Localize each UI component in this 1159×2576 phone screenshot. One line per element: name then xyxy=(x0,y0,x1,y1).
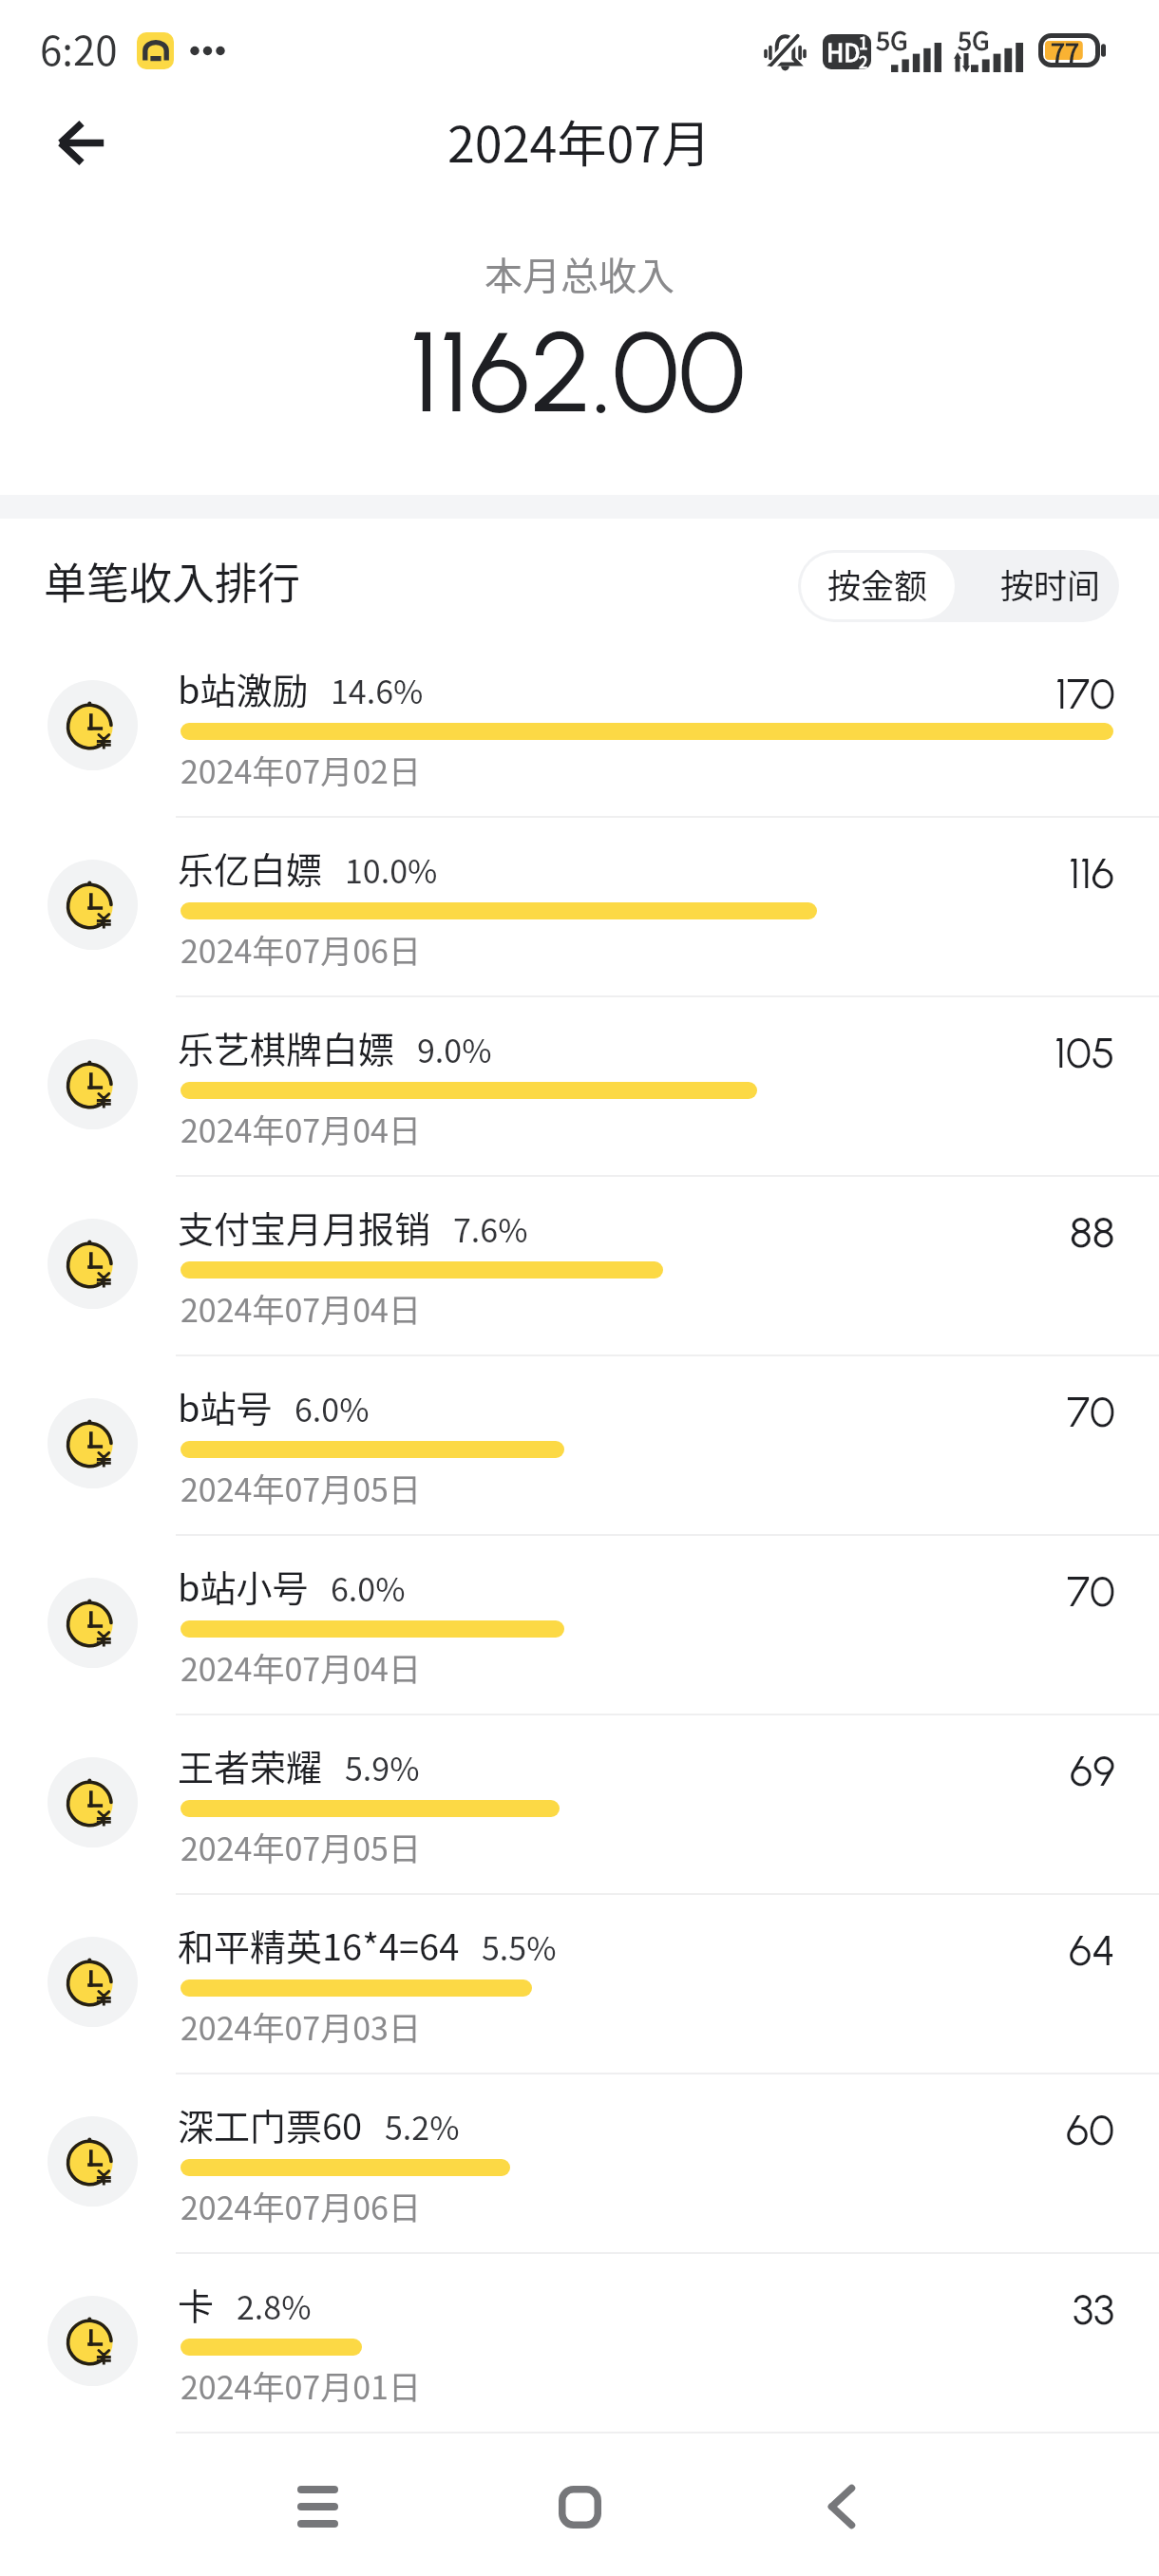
staticText: 5G xyxy=(876,21,908,58)
button[interactable]: Recents xyxy=(241,2437,393,2576)
staticText: 2024年07月06日 xyxy=(180,926,421,973)
staticText: 9.0% xyxy=(417,1026,492,1072)
staticText: 单笔收入排行 xyxy=(44,550,301,612)
staticText: 5.9% xyxy=(345,1744,420,1790)
button[interactable]: b站小号 xyxy=(0,1535,1159,1714)
staticText: 王者荣耀 xyxy=(178,1739,323,1791)
button[interactable]: b站激励 xyxy=(0,637,1159,817)
button[interactable]: Home xyxy=(503,2437,655,2576)
staticText: 乐亿白嫖 xyxy=(178,842,323,894)
staticText: 卡 xyxy=(178,2278,215,2330)
staticText: 5.5% xyxy=(482,1923,557,1970)
button[interactable]: 卡 xyxy=(0,2253,1159,2433)
staticText: 70 xyxy=(1067,1565,1115,1617)
staticText: 按金额 xyxy=(827,559,928,608)
staticText: 支付宝月月报销 xyxy=(178,1201,431,1253)
staticText: 60 xyxy=(1066,2104,1115,2155)
staticText: 6.0% xyxy=(331,1564,406,1611)
staticText: 88 xyxy=(1070,1206,1115,1258)
staticText: 5G xyxy=(958,21,990,58)
staticText: 2.8% xyxy=(237,2282,312,2329)
staticText: 和平精英16*4=64 xyxy=(178,1919,460,1971)
staticText: 6:20 xyxy=(40,19,118,77)
staticText: b站激励 xyxy=(178,662,309,714)
staticText: 1 xyxy=(859,34,868,54)
button[interactable]: Back xyxy=(766,2437,918,2576)
staticText: 2024年07月 xyxy=(447,105,712,177)
button[interactable]: 深工门票60 xyxy=(0,2074,1159,2253)
button[interactable]: Back xyxy=(31,95,126,185)
button[interactable]: 按时间 xyxy=(959,553,1116,619)
staticText: 2024年07月04日 xyxy=(180,1106,421,1152)
staticText: 2024年07月01日 xyxy=(180,2362,421,2409)
staticText: 64 xyxy=(1069,1924,1115,1976)
staticText: 2024年07月02日 xyxy=(180,747,421,793)
button[interactable]: 王者荣耀 xyxy=(0,1714,1159,1894)
staticText: 7.6% xyxy=(453,1205,528,1252)
staticText: 105 xyxy=(1054,1027,1115,1078)
staticText: 2024年07月05日 xyxy=(180,1465,421,1511)
staticText: 2 xyxy=(859,49,868,69)
staticText: 2024年07月03日 xyxy=(180,2003,421,2050)
staticText: 6.0% xyxy=(294,1385,370,1431)
button[interactable]: 和平精英16*4=64 xyxy=(0,1894,1159,2074)
button[interactable]: 支付宝月月报销 xyxy=(0,1176,1159,1355)
staticText: 69 xyxy=(1070,1745,1115,1796)
staticText: 2024年07月06日 xyxy=(180,2183,421,2229)
button[interactable]: b站号 xyxy=(0,1355,1159,1535)
staticText: 14.6% xyxy=(331,667,424,713)
button[interactable]: 乐艺棋牌白嫖 xyxy=(0,996,1159,1176)
staticText: 77 xyxy=(1051,33,1079,66)
staticText: b站小号 xyxy=(178,1560,309,1612)
button[interactable]: 按金额 xyxy=(801,553,955,619)
staticText: HD xyxy=(826,34,861,68)
staticText: 33 xyxy=(1073,2283,1115,2335)
staticText: 1162.00 xyxy=(409,304,746,440)
staticText: 深工门票60 xyxy=(178,2098,363,2150)
staticText: 170 xyxy=(1055,668,1115,719)
staticText: 70 xyxy=(1067,1386,1115,1437)
staticText: 按时间 xyxy=(1000,559,1101,608)
staticText: 5.2% xyxy=(385,2103,460,2150)
staticText: 10.0% xyxy=(345,846,438,893)
staticText: b站号 xyxy=(178,1380,273,1432)
staticText: 2024年07月05日 xyxy=(180,1824,421,1870)
staticText: 本月总收入 xyxy=(484,246,674,301)
staticText: 乐艺棋牌白嫖 xyxy=(178,1021,395,1073)
staticText: 2024年07月04日 xyxy=(180,1644,421,1691)
button[interactable]: 乐亿白嫖 xyxy=(0,817,1159,996)
staticText: 2024年07月04日 xyxy=(180,1285,421,1332)
staticText: 116 xyxy=(1069,847,1115,899)
